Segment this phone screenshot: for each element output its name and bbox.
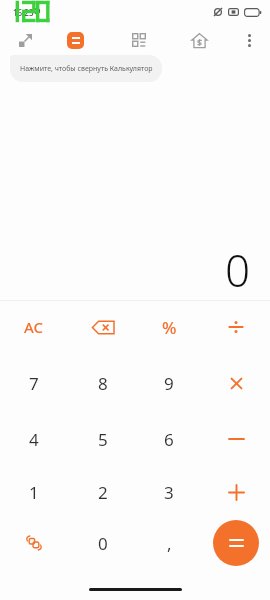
button[interactable]: Minus — [208, 413, 264, 465]
button[interactable]: Divide — [208, 301, 264, 353]
button[interactable]: % — [141, 301, 197, 353]
staticText: 0 — [98, 532, 108, 555]
button[interactable]: 5 — [75, 413, 131, 465]
staticText: 2 — [98, 481, 108, 504]
button[interactable]: 8 — [75, 357, 131, 409]
button[interactable]: Multiply — [208, 357, 264, 409]
staticText: , — [167, 532, 172, 555]
button[interactable]: Plus — [208, 466, 264, 518]
staticText: 0 — [225, 240, 251, 292]
button[interactable]: Collapse window — [12, 27, 38, 53]
staticText: 7 — [29, 372, 39, 395]
staticText: AC — [24, 317, 44, 337]
button[interactable]: Unit converter — [6, 517, 62, 569]
staticText: 9 — [164, 372, 174, 395]
staticText: 1 — [29, 481, 39, 504]
staticText: 4 — [29, 428, 39, 451]
button[interactable]: 6 — [141, 413, 197, 465]
button[interactable]: Finance home — [185, 26, 213, 54]
button[interactable]: 3 — [141, 466, 197, 518]
staticText: % — [162, 316, 177, 339]
button[interactable]: , — [141, 517, 197, 569]
button[interactable]: 1 — [6, 466, 62, 518]
staticText: Нажмите, чтобы свернуть Калькулятор — [20, 64, 153, 74]
button[interactable]: Equals — [213, 520, 259, 566]
button[interactable]: 4 — [6, 413, 62, 465]
button[interactable]: Backspace — [75, 301, 131, 353]
staticText: 5 — [98, 428, 108, 451]
button[interactable]: 9 — [141, 357, 197, 409]
staticText: 3 — [164, 481, 174, 504]
button[interactable]: More options — [236, 27, 262, 53]
button[interactable]: Нажмите, чтобы свернуть Калькулятор — [10, 55, 162, 82]
button[interactable]: 2 — [75, 466, 131, 518]
staticText: 6 — [164, 428, 174, 451]
staticText: 8 — [98, 372, 108, 395]
staticText: 16:23 — [13, 7, 34, 18]
button[interactable]: Calculator — [62, 27, 88, 53]
button[interactable]: AC — [6, 301, 62, 353]
button[interactable]: 7 — [6, 357, 62, 409]
button[interactable]: 0 — [75, 517, 131, 569]
button[interactable]: App grid — [126, 27, 152, 53]
